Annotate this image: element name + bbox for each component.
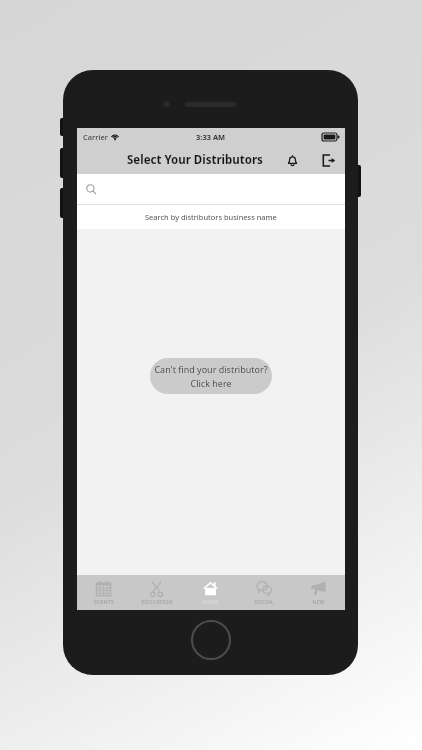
button[interactable]: EVENTS [77, 575, 130, 610]
button[interactable]: Log out [317, 149, 339, 171]
staticText: EVENTS [94, 598, 114, 605]
button[interactable]: EDUCATION [130, 575, 183, 610]
staticText: Click here [190, 377, 232, 389]
button[interactable]: SOCIAL [237, 575, 291, 610]
staticText: Search by distributors business name [145, 212, 277, 222]
button[interactable]: HOME [183, 575, 237, 610]
button[interactable]: Can't find your distributor? [150, 358, 272, 394]
staticText: HOME [202, 598, 219, 605]
staticText: Carrier [83, 132, 108, 142]
button[interactable] [77, 174, 345, 205]
staticText: Select Your Distributors [127, 152, 263, 168]
button[interactable]: Notifications [281, 149, 303, 171]
staticText: Can't find your distributor? [154, 363, 268, 375]
staticText: NEW [312, 598, 325, 605]
button[interactable]: NEW [291, 575, 345, 610]
staticText: SOCIAL [254, 598, 274, 605]
staticText: 3:33 AM [196, 132, 226, 142]
staticText: EDUCATION [141, 598, 173, 605]
